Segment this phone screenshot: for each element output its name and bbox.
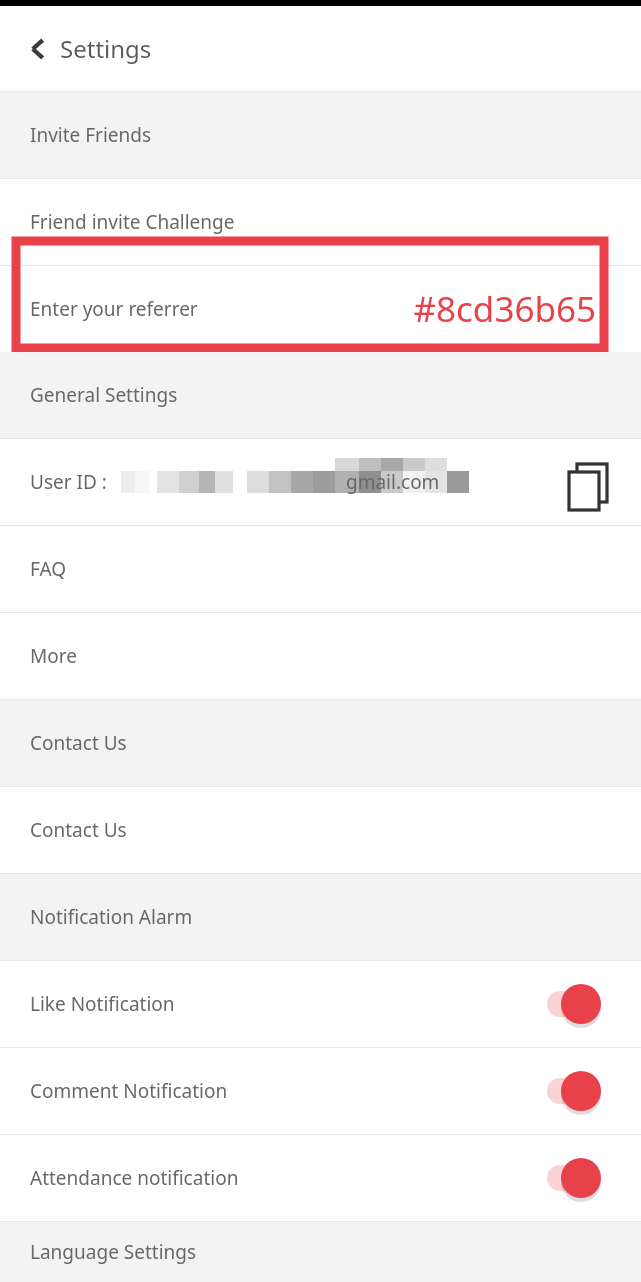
staticText: General Settings <box>30 382 178 408</box>
button[interactable]: FAQ <box>0 526 641 612</box>
button[interactable]: Like Notification <box>0 961 641 1047</box>
other: Toggle Like Notification <box>547 984 603 1024</box>
button[interactable]: Enter your referrer <box>0 266 641 352</box>
button[interactable]: More <box>0 613 641 699</box>
button[interactable]: Back <box>16 27 60 71</box>
staticText: Comment Notification <box>30 1078 228 1104</box>
other: Toggle Attendance notification <box>547 1158 603 1198</box>
staticText: Contact Us <box>30 817 127 843</box>
staticText: #8cd36b65 <box>413 285 596 333</box>
staticText: FAQ <box>30 556 67 582</box>
other: Toggle Comment Notification <box>547 1071 603 1111</box>
staticText: More <box>30 643 77 669</box>
staticText: User ID : <box>30 469 107 495</box>
staticText: Language Settings <box>30 1239 197 1265</box>
staticText: Friend invite Challenge <box>30 209 235 235</box>
staticText: Settings <box>60 32 152 65</box>
staticText: Contact Us <box>30 730 127 756</box>
staticText: Like Notification <box>30 991 175 1017</box>
button[interactable]: Contact Us <box>0 787 641 873</box>
button[interactable]: Attendance notification <box>0 1135 641 1221</box>
staticText: Attendance notification <box>30 1165 239 1191</box>
staticText: Enter your referrer <box>30 296 198 322</box>
staticText: gmail.com <box>346 469 440 495</box>
staticText: Notification Alarm <box>30 904 193 930</box>
button[interactable]: User ID : <box>0 439 641 525</box>
button[interactable]: Friend invite Challenge <box>0 179 641 265</box>
button[interactable]: Copy user ID <box>561 456 613 508</box>
button[interactable]: Comment Notification <box>0 1048 641 1134</box>
staticText: Invite Friends <box>30 122 152 148</box>
